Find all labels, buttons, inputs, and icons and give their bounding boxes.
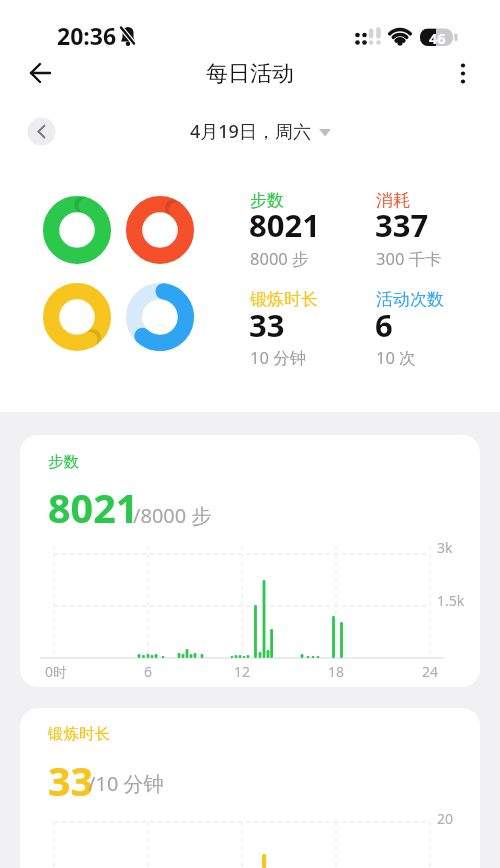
staticText: 46 <box>429 28 446 48</box>
button[interactable] <box>20 58 56 90</box>
staticText: 活动次数 <box>376 289 444 310</box>
staticText: 消耗 <box>376 190 410 211</box>
staticText: 8021 <box>48 481 139 535</box>
staticText: 10 次 <box>376 346 416 369</box>
staticText: /8000 步 <box>133 502 212 529</box>
staticText: 步数 <box>250 190 284 211</box>
staticText: 18 <box>328 662 345 681</box>
staticText: 300 千卡 <box>376 247 442 270</box>
button[interactable] <box>27 117 56 146</box>
button[interactable] <box>20 708 480 868</box>
staticText: 8000 步 <box>250 247 309 270</box>
staticText: 33 <box>249 304 285 346</box>
staticText: 337 <box>375 204 429 246</box>
staticText: 步数 <box>48 452 79 472</box>
staticText: 8021 <box>249 204 320 246</box>
staticText: 锻炼时长 <box>48 724 110 744</box>
staticText: 0时 <box>45 662 68 681</box>
staticText: 20:36 <box>57 20 117 51</box>
staticText: 33 <box>48 754 94 808</box>
staticText: 每日活动 <box>206 60 294 88</box>
staticText: 1.5k <box>437 591 465 610</box>
staticText: 6 <box>144 662 153 681</box>
staticText: 4月19日，周六 <box>190 119 311 144</box>
staticText: /10 分钟 <box>88 770 164 797</box>
staticText: 24 <box>422 662 439 681</box>
staticText: 3k <box>437 538 453 557</box>
button[interactable] <box>448 58 480 90</box>
staticText: 6 <box>375 304 393 346</box>
staticText: 20 <box>437 809 454 828</box>
staticText: 10 分钟 <box>250 346 307 369</box>
staticText: 12 <box>234 662 251 681</box>
button[interactable] <box>20 435 480 687</box>
button[interactable] <box>180 115 345 149</box>
staticText: 锻炼时长 <box>250 289 318 310</box>
